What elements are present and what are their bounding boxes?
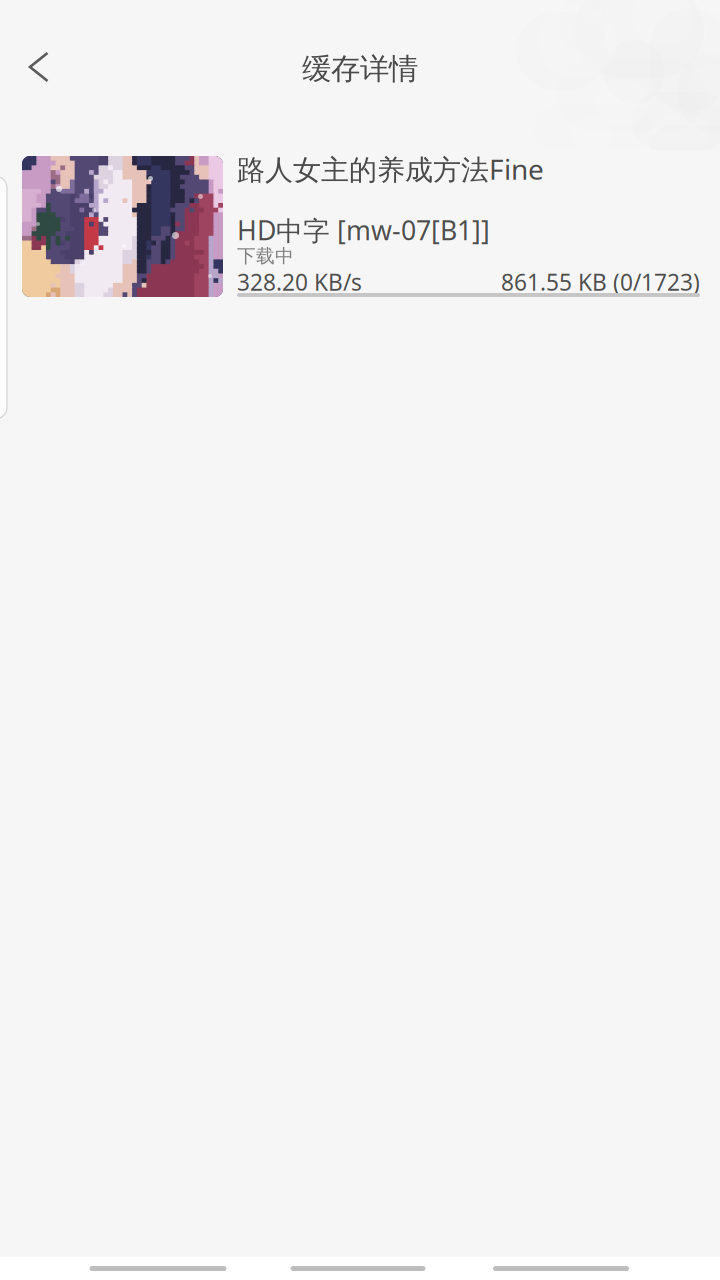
staticText: 路人女主的养成方法Fine (237, 150, 544, 188)
staticText: HD中字 [mw-07[B1]] (237, 212, 490, 248)
staticText: 缓存详情 (302, 51, 418, 87)
staticText: 861.55 KB (0/1723) (501, 267, 700, 297)
button[interactable]: 路人女主的养成方法Fine (0, 150, 720, 310)
button[interactable]: 最近任务 (461, 1257, 661, 1280)
button[interactable]: 主页 (258, 1257, 458, 1280)
button[interactable]: 返回 (3, 31, 75, 103)
staticText: 328.20 KB/s (237, 267, 362, 297)
button[interactable]: 返回 (58, 1257, 258, 1280)
staticText: 下载中 (237, 244, 294, 267)
